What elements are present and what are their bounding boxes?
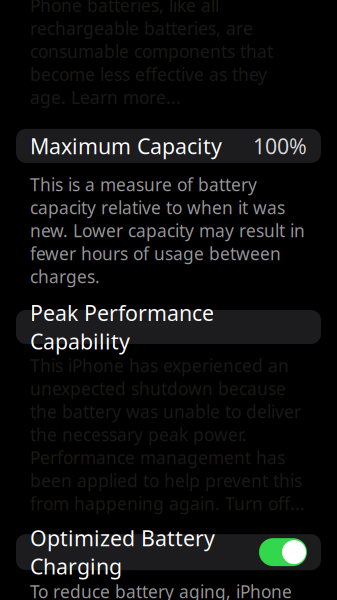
staticText: Peak Performance Capability	[30, 299, 214, 355]
staticText: This is a measure of battery capacity re…	[30, 173, 305, 288]
staticText: To reduce battery aging, iPhone learns f…	[30, 580, 305, 600]
staticText: Optimized Battery Charging	[30, 524, 215, 580]
staticText: This iPhone has experienced an unexpecte…	[30, 354, 305, 515]
staticText: Maximum Capacity	[30, 132, 222, 160]
button[interactable]: Maximum Capacity	[16, 129, 321, 163]
staticText: 100%	[253, 132, 307, 160]
button[interactable]: Optimized Battery Charging	[16, 534, 321, 570]
staticText: Phone batteries, like all rechargeable b…	[30, 0, 273, 109]
button[interactable]: Peak Performance Capability	[16, 310, 321, 344]
